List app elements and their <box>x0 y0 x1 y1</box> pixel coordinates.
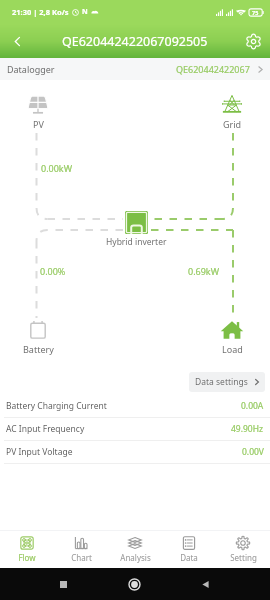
staticText: Data <box>180 552 198 563</box>
button[interactable]: Settings <box>236 24 270 58</box>
staticText: 0.00V <box>242 446 264 458</box>
staticText: 0.69kW <box>188 265 220 277</box>
staticText: QE620442422067092505 <box>62 33 208 50</box>
staticText: Chart <box>71 552 92 563</box>
button[interactable]: Chart <box>54 531 108 568</box>
staticText: QE620442422067 <box>176 63 250 75</box>
button[interactable]: PV Input Voltage <box>0 441 270 463</box>
button[interactable]: Flow <box>0 531 54 568</box>
staticText: 75 <box>252 9 259 16</box>
staticText: Analysis <box>120 552 151 563</box>
staticText: N <box>82 7 88 17</box>
staticText: 0.00A <box>241 400 264 412</box>
staticText: Grid <box>223 118 242 130</box>
staticText: PV Input Voltage <box>6 446 73 458</box>
button[interactable]: Data settings <box>189 372 265 392</box>
staticText: Battery Charging Current <box>6 400 107 412</box>
button[interactable]: Data <box>162 531 216 568</box>
button[interactable]: Analysis <box>108 531 162 568</box>
staticText: 49.90Hz <box>231 423 264 435</box>
staticText: AC Input Frequency <box>6 423 85 435</box>
button[interactable]: Battery Charging Current <box>0 395 270 417</box>
staticText: Hybrid inverter <box>106 236 167 248</box>
button[interactable]: AC Input Frequency <box>0 418 270 440</box>
button[interactable]: Back <box>201 580 210 589</box>
button[interactable]: Home <box>128 578 141 591</box>
staticText: 0.00% <box>40 265 66 277</box>
staticText: Battery <box>23 343 54 355</box>
staticText: Load <box>222 343 243 355</box>
staticText: Data settings <box>195 376 248 388</box>
staticText: PV <box>33 118 44 130</box>
staticText: 21:30 | 2,8 Ko/s <box>12 7 69 17</box>
staticText: Datalogger <box>7 63 55 75</box>
staticText: Flow <box>18 552 36 563</box>
staticText: 0.00kW <box>41 162 73 174</box>
button[interactable]: Datalogger <box>0 58 270 80</box>
button[interactable]: Setting <box>216 531 270 568</box>
staticText: Setting <box>230 552 257 563</box>
button[interactable]: Back <box>0 24 34 58</box>
